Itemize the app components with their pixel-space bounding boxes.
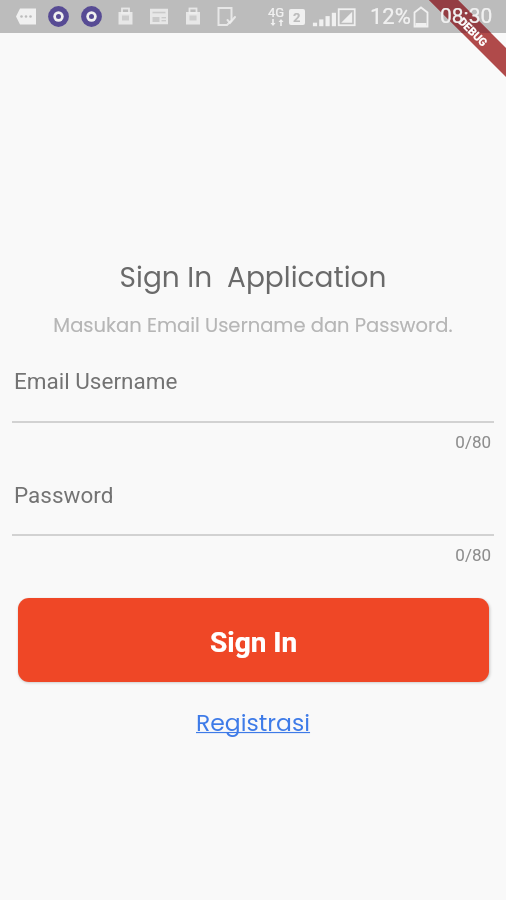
staticText: 12% <box>370 4 411 30</box>
staticText: Email Username <box>14 368 178 394</box>
button[interactable]: Sign In <box>18 598 489 682</box>
staticText: Password <box>14 482 114 508</box>
staticText: DEBUG <box>456 15 490 50</box>
staticText: 08:30 <box>440 4 493 29</box>
staticText: 4G <box>268 5 285 20</box>
staticText: 0/80 <box>0 545 491 565</box>
button[interactable]: Registrasi <box>186 700 321 745</box>
staticText: Masukan Email Username dan Password. <box>0 312 506 339</box>
staticText: Sign In <box>210 626 298 659</box>
staticText: 2 <box>293 10 301 25</box>
button[interactable]: Email Username <box>12 360 494 420</box>
staticText: Registrasi <box>196 706 311 739</box>
staticText: 0/80 <box>0 432 491 452</box>
staticText: Sign In Application <box>0 258 506 297</box>
button[interactable]: Password <box>12 474 494 534</box>
